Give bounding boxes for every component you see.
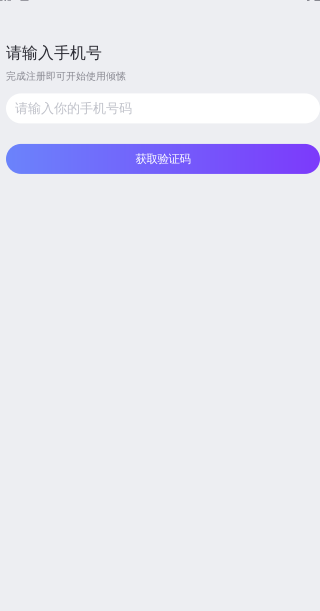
staticText: 请输入手机号 xyxy=(6,43,102,63)
staticText: 完成注册即可开始使用倾愫 xyxy=(6,70,126,82)
button[interactable]: 获取验证码 xyxy=(6,144,320,174)
button[interactable]: 请输入你的手机号码 xyxy=(6,93,320,123)
staticText: 获取验证码 xyxy=(135,152,190,166)
staticText: 请输入你的手机号码 xyxy=(15,100,132,117)
